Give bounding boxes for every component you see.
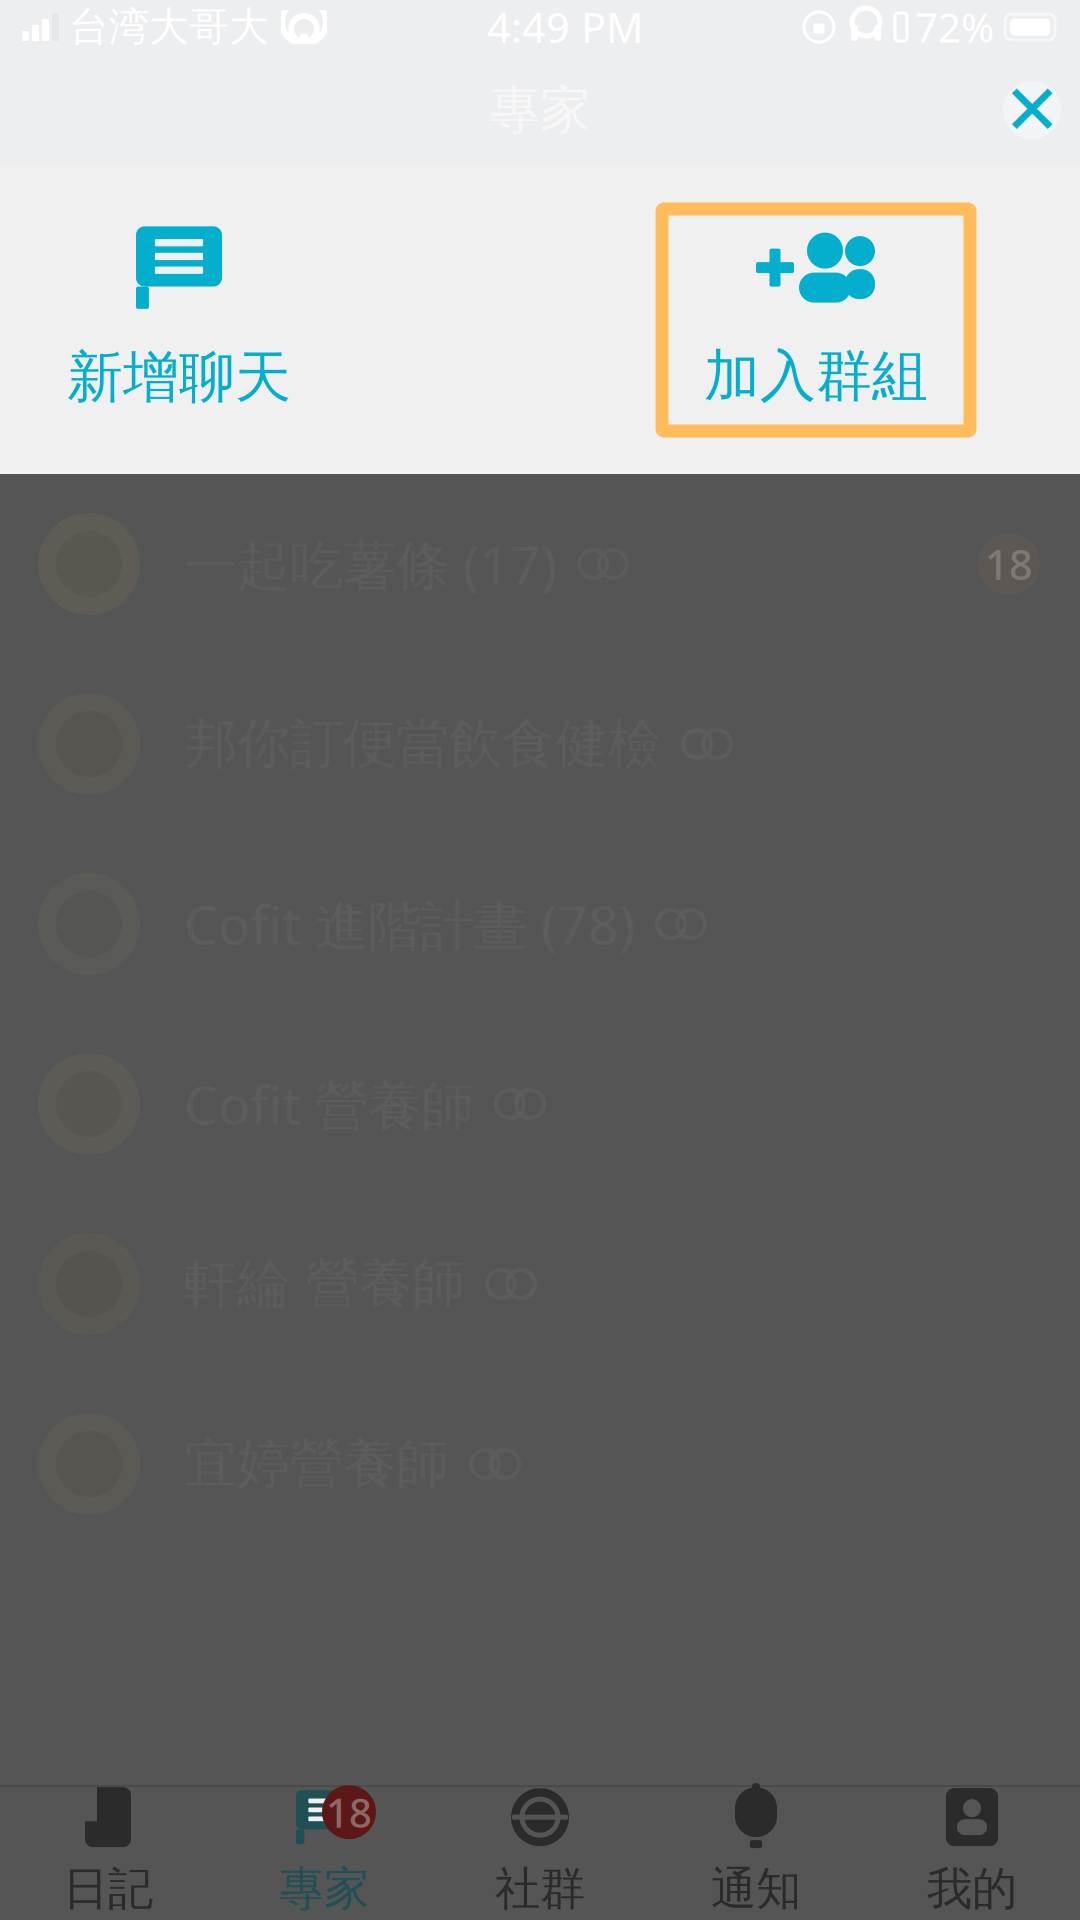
- staticText: 18: [985, 537, 1033, 591]
- staticText: 通知: [711, 1861, 801, 1917]
- button[interactable]: Close: [984, 55, 1080, 165]
- button[interactable]: 社群: [432, 1787, 648, 1915]
- staticText: 加入群組: [704, 342, 928, 410]
- staticText: Cofit 營養師: [184, 1068, 474, 1140]
- staticText: 18: [326, 1786, 372, 1839]
- button[interactable]: 日記: [0, 1787, 216, 1915]
- staticText: 4:49 PM: [487, 0, 643, 54]
- staticText: 我的: [927, 1861, 1017, 1917]
- staticText: 日記: [63, 1861, 153, 1917]
- staticText: Cofit 進階計畫 (78): [184, 888, 635, 960]
- button[interactable]: 加入群組: [668, 215, 964, 425]
- staticText: 72%: [915, 0, 994, 53]
- button[interactable]: 通知: [648, 1787, 864, 1915]
- staticText: 新增聊天: [67, 343, 291, 412]
- staticText: 一起吃薯條 (17): [184, 529, 557, 599]
- staticText: 軒綸 營養師: [184, 1251, 465, 1317]
- staticText: 專家: [489, 79, 591, 141]
- button[interactable]: 新增聊天: [44, 207, 314, 433]
- staticText: 台湾大哥大: [69, 2, 269, 51]
- staticText: 專家: [279, 1861, 369, 1917]
- staticText: 社群: [495, 1861, 585, 1917]
- staticText: ✕: [1003, 71, 1061, 149]
- button[interactable]: 18: [216, 1787, 432, 1915]
- button[interactable]: 我的: [864, 1787, 1080, 1915]
- staticText: 邦你訂便當飲食健檢: [184, 711, 661, 777]
- staticText: 宜婷營養師: [184, 1431, 449, 1497]
